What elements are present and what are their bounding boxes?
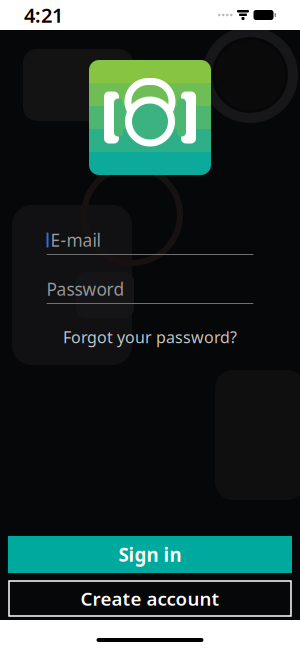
staticText: Sign in [118, 542, 181, 567]
staticText: Forgot your password? [63, 326, 237, 348]
staticText: E-mail [50, 228, 100, 251]
button[interactable]: E-mail [46, 230, 253, 255]
staticText: Password [46, 277, 124, 300]
staticText: 4:21 [24, 2, 63, 28]
button[interactable]: Sign in [8, 536, 292, 573]
button[interactable]: Forgot your password? [47, 326, 253, 348]
button[interactable]: Create account [9, 581, 291, 616]
button[interactable]: Password [46, 279, 253, 304]
staticText: Create account [80, 586, 219, 611]
